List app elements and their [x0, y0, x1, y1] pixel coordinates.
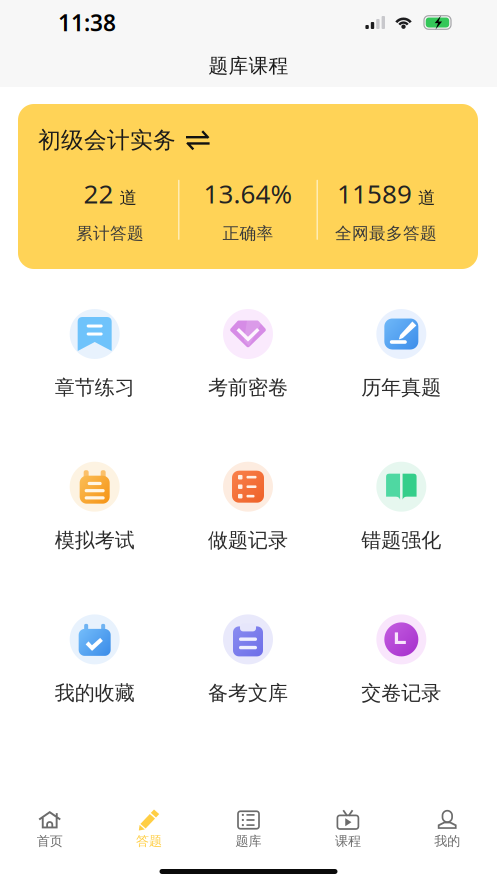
- staticText: 22: [83, 176, 113, 211]
- staticText: 初级会计实务: [38, 126, 176, 155]
- staticText: 错题强化: [361, 528, 441, 553]
- staticText: 章节练习: [55, 375, 135, 400]
- button[interactable]: 考前密卷: [171, 309, 325, 400]
- staticText: 11:38: [58, 7, 116, 38]
- staticText: 课程: [335, 833, 361, 849]
- button[interactable]: 模拟考试: [18, 462, 171, 553]
- button[interactable]: 备考文库: [171, 614, 325, 706]
- staticText: 模拟考试: [55, 528, 135, 553]
- button[interactable]: 做题记录: [171, 462, 325, 553]
- button[interactable]: 历年真题: [325, 309, 478, 400]
- button[interactable]: 答题: [99, 801, 199, 853]
- staticText: 道: [119, 187, 136, 208]
- staticText: 全网最多答题: [335, 223, 437, 244]
- staticText: 题库: [235, 833, 261, 849]
- button[interactable]: 章节练习: [18, 309, 171, 400]
- staticText: 交卷记录: [361, 680, 441, 706]
- staticText: 做题记录: [208, 528, 288, 553]
- button[interactable]: 题库: [199, 801, 298, 853]
- staticText: 题库课程: [208, 54, 288, 78]
- staticText: 首页: [37, 833, 63, 849]
- staticText: 13.64%: [203, 176, 292, 211]
- staticText: 道: [418, 187, 435, 208]
- staticText: 备考文库: [208, 680, 288, 706]
- staticText: 我的收藏: [55, 680, 135, 706]
- button[interactable]: 错题强化: [325, 462, 478, 553]
- staticText: 考前密卷: [208, 375, 288, 400]
- button[interactable]: 首页: [0, 801, 99, 853]
- staticText: 累计答题: [76, 223, 144, 244]
- button[interactable]: 我的: [398, 801, 497, 853]
- staticText: 11589: [337, 176, 412, 211]
- staticText: 我的: [434, 833, 460, 849]
- button[interactable]: 课程: [298, 801, 398, 853]
- button[interactable]: 交卷记录: [325, 614, 478, 706]
- staticText: 正确率: [222, 223, 273, 244]
- staticText: 历年真题: [361, 375, 441, 400]
- button[interactable]: 初级会计实务: [38, 126, 478, 155]
- button[interactable]: 我的收藏: [18, 614, 171, 706]
- staticText: 答题: [136, 833, 162, 849]
